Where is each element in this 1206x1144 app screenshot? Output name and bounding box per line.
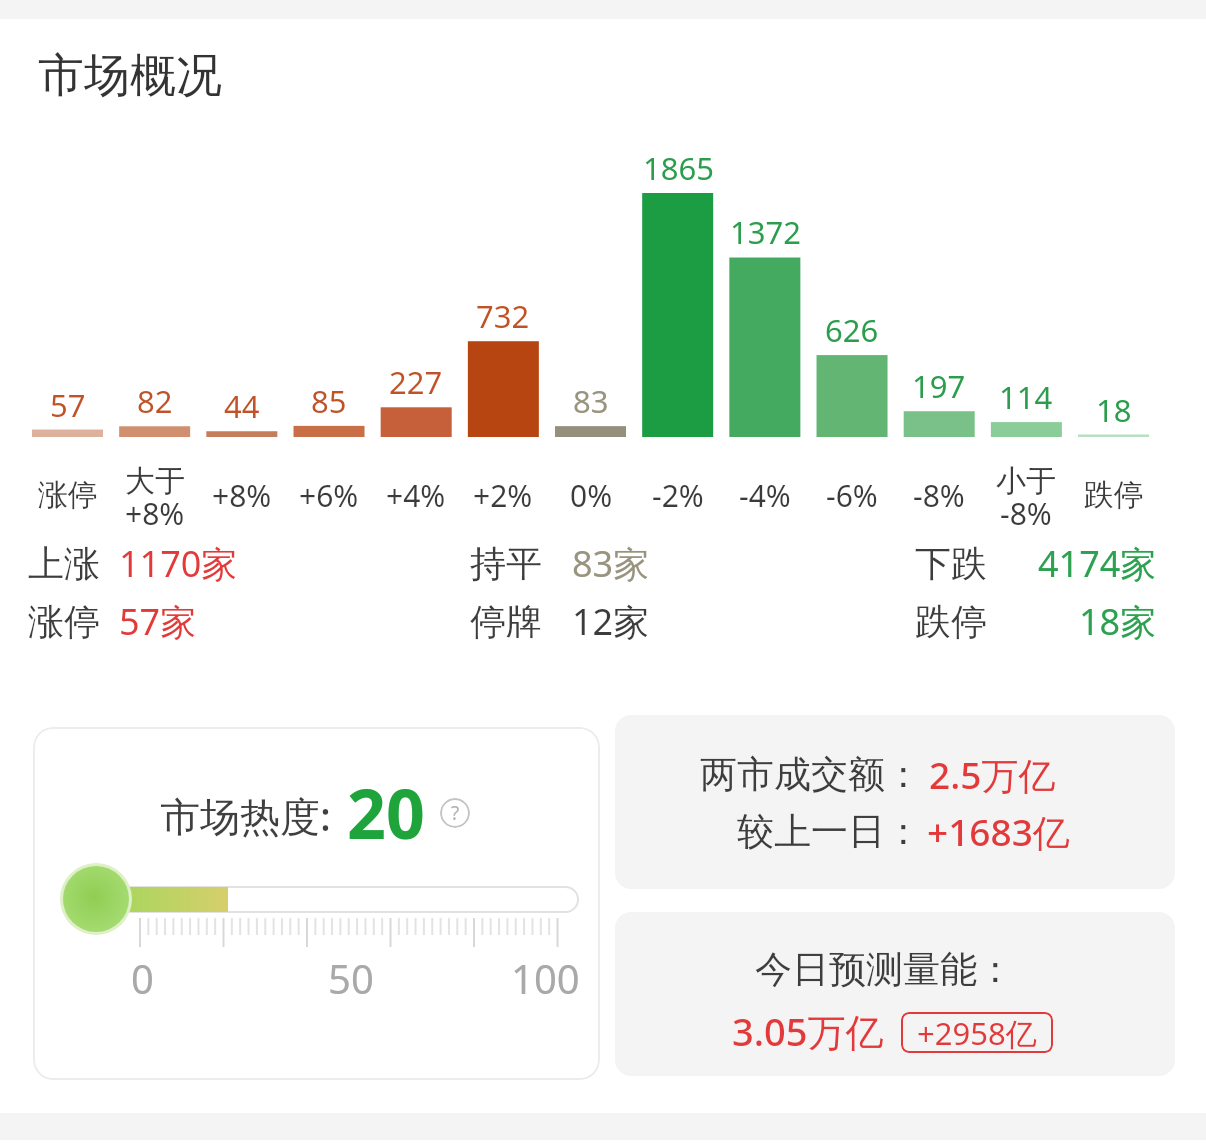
button[interactable]: [615, 715, 1175, 889]
staticText: 涨停: [28, 599, 100, 644]
staticText: +2958亿: [917, 1012, 1037, 1053]
staticText: 18: [1096, 389, 1132, 431]
staticText: ?: [451, 800, 460, 826]
staticText: 20: [347, 766, 425, 859]
staticText: 85: [311, 380, 347, 422]
staticText: -8%: [913, 475, 965, 516]
staticText: 持平: [470, 541, 542, 586]
staticText: 197: [912, 365, 966, 407]
staticText: 1372: [730, 211, 801, 253]
staticText: 3.05万亿: [732, 1005, 884, 1057]
staticText: +2%: [473, 475, 533, 516]
staticText: 较上一日：: [737, 808, 922, 855]
staticText: 跌停: [1084, 476, 1144, 514]
staticText: 57家: [119, 597, 197, 646]
staticText: +4%: [386, 475, 446, 516]
staticText: 两市成交额：: [700, 751, 922, 798]
staticText: -4%: [739, 475, 791, 516]
staticText: 大于: [125, 462, 185, 500]
staticText: 732: [476, 295, 530, 337]
staticText: +6%: [299, 475, 359, 516]
staticText: 下跌: [915, 541, 987, 586]
staticText: 市场热度:: [160, 788, 331, 843]
button[interactable]: [33, 727, 600, 1080]
staticText: 44: [224, 385, 260, 427]
staticText: 市场概况: [38, 47, 222, 105]
staticText: 停牌: [470, 599, 542, 644]
staticText: +8%: [212, 475, 272, 516]
button[interactable]: ?: [440, 798, 470, 828]
staticText: 83: [573, 380, 609, 422]
staticText: 50: [328, 951, 374, 1005]
staticText: 4174家: [1038, 539, 1157, 588]
staticText: 上涨: [28, 541, 100, 586]
staticText: 626: [825, 309, 879, 351]
staticText: 1865: [643, 147, 714, 189]
staticText: 18家: [1079, 597, 1157, 646]
staticText: 今日预测量能：: [755, 946, 1014, 993]
staticText: 小于: [996, 462, 1056, 500]
staticText: 跌停: [915, 599, 987, 644]
staticText: 0%: [570, 475, 613, 516]
staticText: 57: [50, 384, 86, 426]
staticText: 83家: [572, 539, 650, 588]
staticText: -2%: [652, 475, 704, 516]
staticText: +1683亿: [927, 806, 1070, 857]
staticText: 1170家: [119, 539, 238, 588]
staticText: 114: [999, 376, 1053, 418]
button[interactable]: +2958亿: [901, 1012, 1053, 1053]
staticText: 0: [131, 951, 154, 1005]
staticText: -6%: [826, 475, 878, 516]
staticText: 100: [511, 951, 580, 1005]
staticText: +8%: [125, 493, 185, 534]
staticText: 227: [389, 361, 443, 403]
staticText: 12家: [572, 597, 650, 646]
staticText: -8%: [1000, 493, 1052, 534]
staticText: 2.5万亿: [929, 749, 1056, 800]
button[interactable]: [615, 912, 1175, 1076]
staticText: 82: [137, 380, 173, 422]
staticText: 涨停: [38, 476, 98, 514]
